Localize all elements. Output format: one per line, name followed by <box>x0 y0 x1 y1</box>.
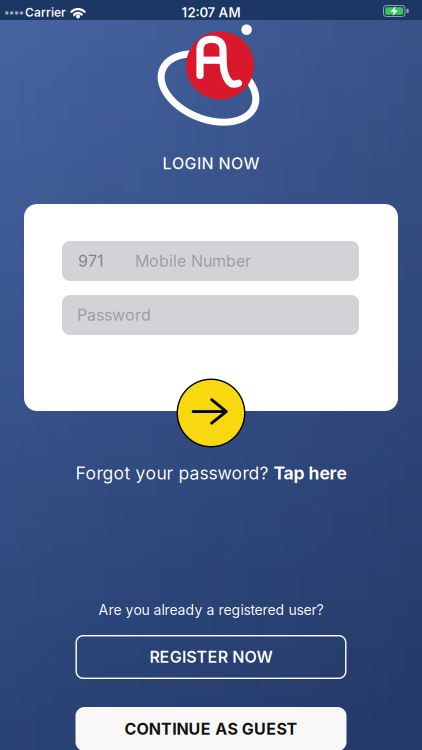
button[interactable]: Tap here <box>273 462 346 484</box>
button[interactable]: CONTINUE AS GUEST <box>75 707 346 750</box>
button[interactable]: Log in <box>177 379 245 447</box>
staticText: Carrier <box>25 5 66 20</box>
staticText: LOGIN NOW <box>162 154 259 173</box>
staticText: Tap here <box>273 462 346 484</box>
staticText: 971 <box>78 252 104 270</box>
button[interactable]: REGISTER NOW <box>75 635 346 679</box>
staticText: Mobile Number <box>135 252 251 270</box>
staticText: Password <box>77 306 151 324</box>
staticText: Are you already a registered user? <box>98 601 323 618</box>
staticText: 12:07 AM <box>181 4 240 20</box>
button[interactable]: 971 <box>62 241 359 281</box>
staticText: Forgot your password? <box>75 462 273 484</box>
staticText: REGISTER NOW <box>149 648 273 666</box>
staticText: CONTINUE AS GUEST <box>124 720 298 738</box>
button[interactable]: Password <box>62 295 359 335</box>
